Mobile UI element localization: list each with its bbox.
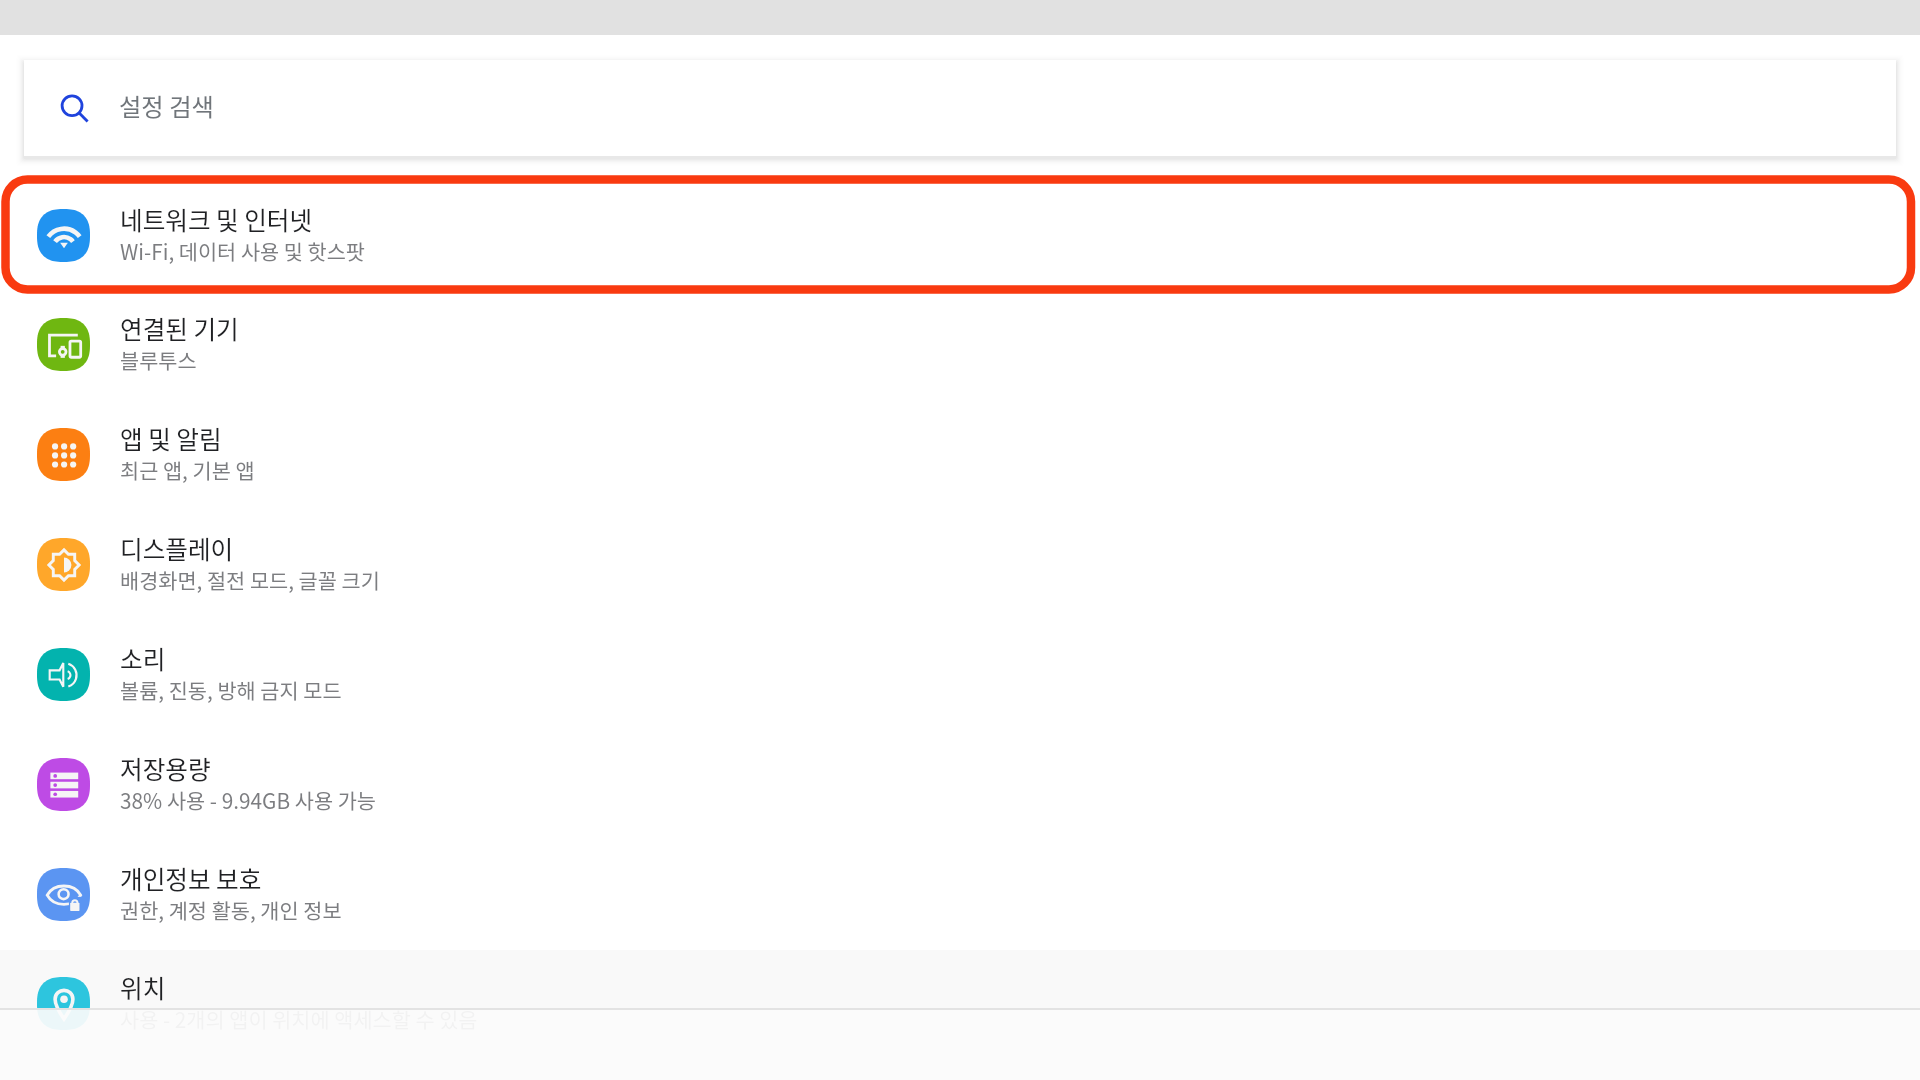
staticText: 38% 사용 - 9.94GB 사용 가능 <box>120 785 376 815</box>
staticText: 설정 검색 <box>119 88 214 123</box>
staticText: Wi-Fi, 데이터 사용 및 핫스팟 <box>120 236 366 266</box>
button[interactable]: 앱 및 알림 <box>0 399 1920 509</box>
staticText: 앱 및 알림 <box>120 420 222 456</box>
staticText: 최근 앱, 기본 앱 <box>120 455 255 485</box>
other: Search <box>61 94 89 122</box>
button[interactable]: 소리 <box>0 619 1920 729</box>
staticText: 블루투스 <box>120 345 197 375</box>
staticText: 네트워크 및 인터넷 <box>120 201 313 237</box>
button[interactable]: 디스플레이 <box>0 509 1920 619</box>
staticText: 볼륨, 진동, 방해 금지 모드 <box>120 675 342 705</box>
staticText: 사용 - 2개의 앱이 위치에 액세스할 수 있음 <box>120 1004 478 1034</box>
staticText: 배경화면, 절전 모드, 글꼴 크기 <box>120 565 380 595</box>
button[interactable]: 위치 <box>0 948 1920 1058</box>
staticText: 권한, 계정 활동, 개인 정보 <box>120 895 342 925</box>
staticText: 위치 <box>120 969 166 1005</box>
button[interactable]: 네트워크 및 인터넷 <box>0 180 1920 290</box>
button[interactable]: 연결된 기기 <box>0 289 1920 399</box>
staticText: 개인정보 보호 <box>120 860 262 896</box>
staticText: 연결된 기기 <box>120 310 239 346</box>
button[interactable]: 개인정보 보호 <box>0 839 1920 949</box>
button[interactable]: 저장용량 <box>0 729 1920 839</box>
staticText: 소리 <box>120 640 166 676</box>
staticText: 디스플레이 <box>120 530 234 566</box>
button[interactable]: Search <box>24 60 1896 156</box>
staticText: 저장용량 <box>120 750 211 786</box>
